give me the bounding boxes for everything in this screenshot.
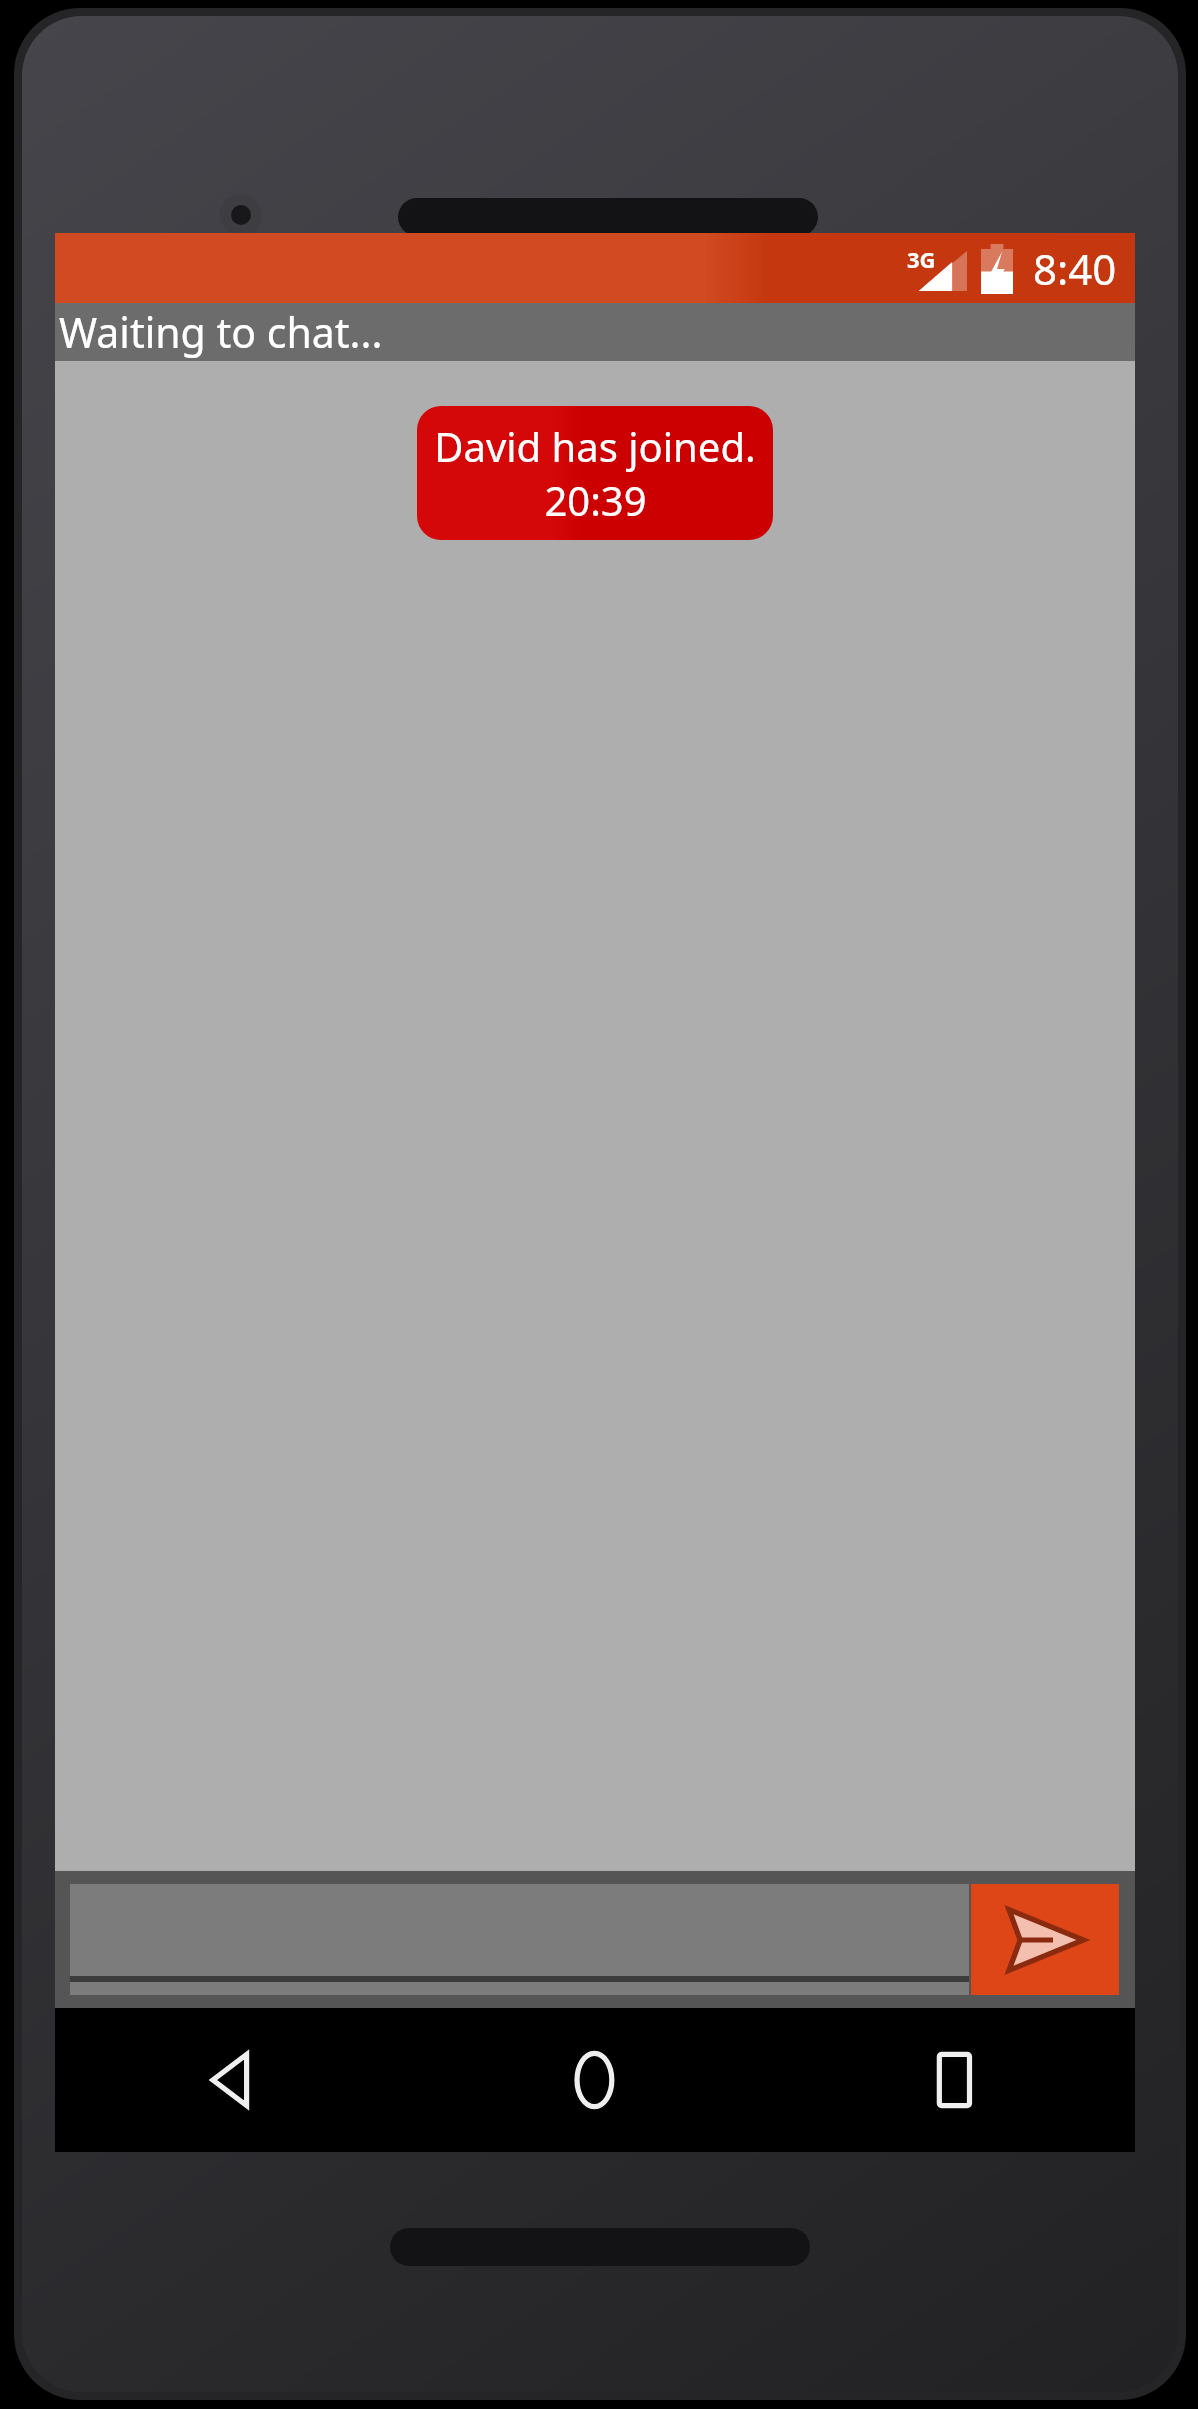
staticText: David has joined. <box>434 419 756 473</box>
button[interactable]: Send message <box>971 1884 1119 1995</box>
staticText: 3G <box>907 244 936 274</box>
button[interactable]: Back <box>55 2008 415 2152</box>
button[interactable] <box>70 1884 969 1995</box>
button[interactable]: Waiting to chat... <box>55 303 1135 361</box>
staticText: 20:39 <box>544 473 647 527</box>
staticText: 8:40 <box>1033 240 1117 297</box>
staticText: Waiting to chat... <box>59 304 383 360</box>
button[interactable]: Home <box>415 2008 775 2152</box>
button[interactable]: Recent apps <box>775 2008 1135 2152</box>
button[interactable]: David has joined. <box>417 406 773 540</box>
